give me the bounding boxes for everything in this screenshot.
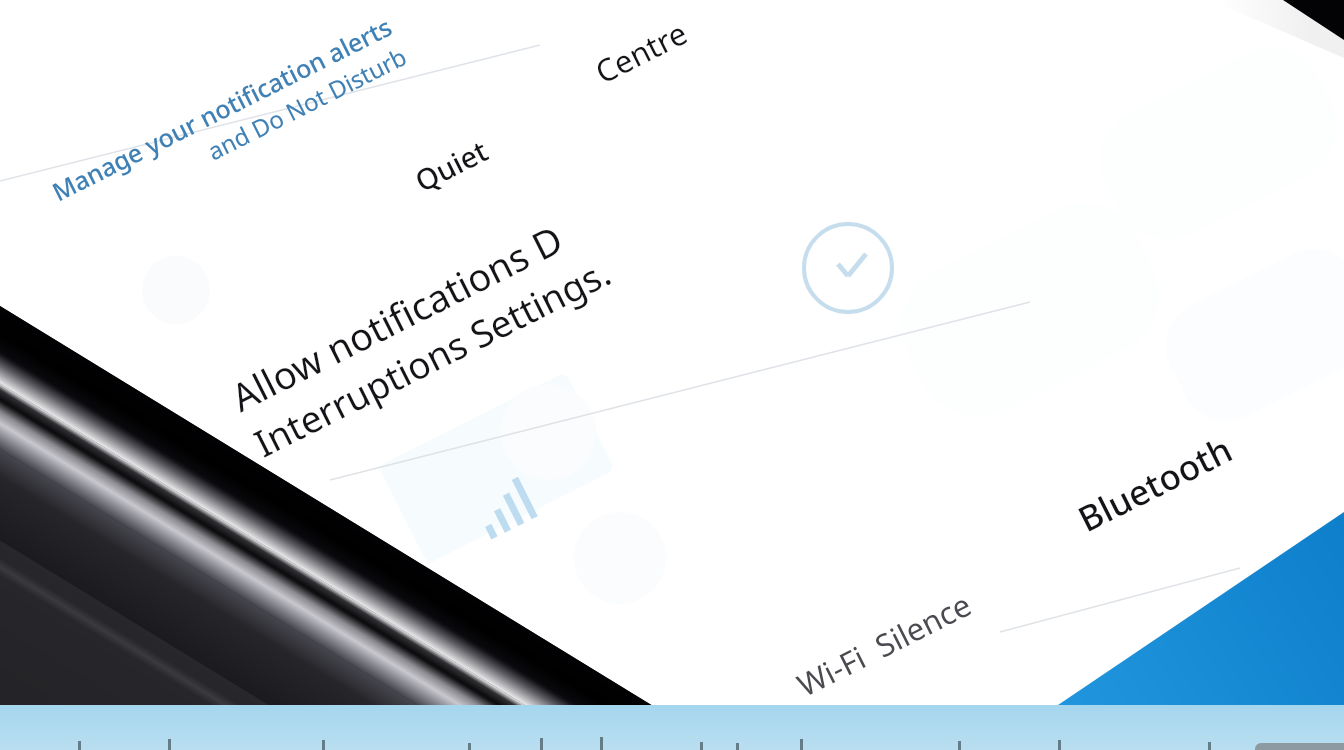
button[interactable]: Signal strength xyxy=(378,372,615,564)
staticText: Bluetooth xyxy=(1070,425,1240,543)
staticText: Wi-Fi Silence xyxy=(790,583,979,705)
staticText: and Do Not Disturb xyxy=(201,39,412,167)
button[interactable]: Notification toggle xyxy=(880,182,1181,437)
button[interactable]: Priority toggle xyxy=(1082,29,1344,257)
staticText: Allow notifications D xyxy=(222,212,571,422)
staticText: Interruptions Settings. xyxy=(245,246,619,467)
staticText: Quiet xyxy=(408,130,494,200)
staticText: Centre xyxy=(588,11,694,93)
staticText: Manage your notification alerts xyxy=(46,9,397,208)
